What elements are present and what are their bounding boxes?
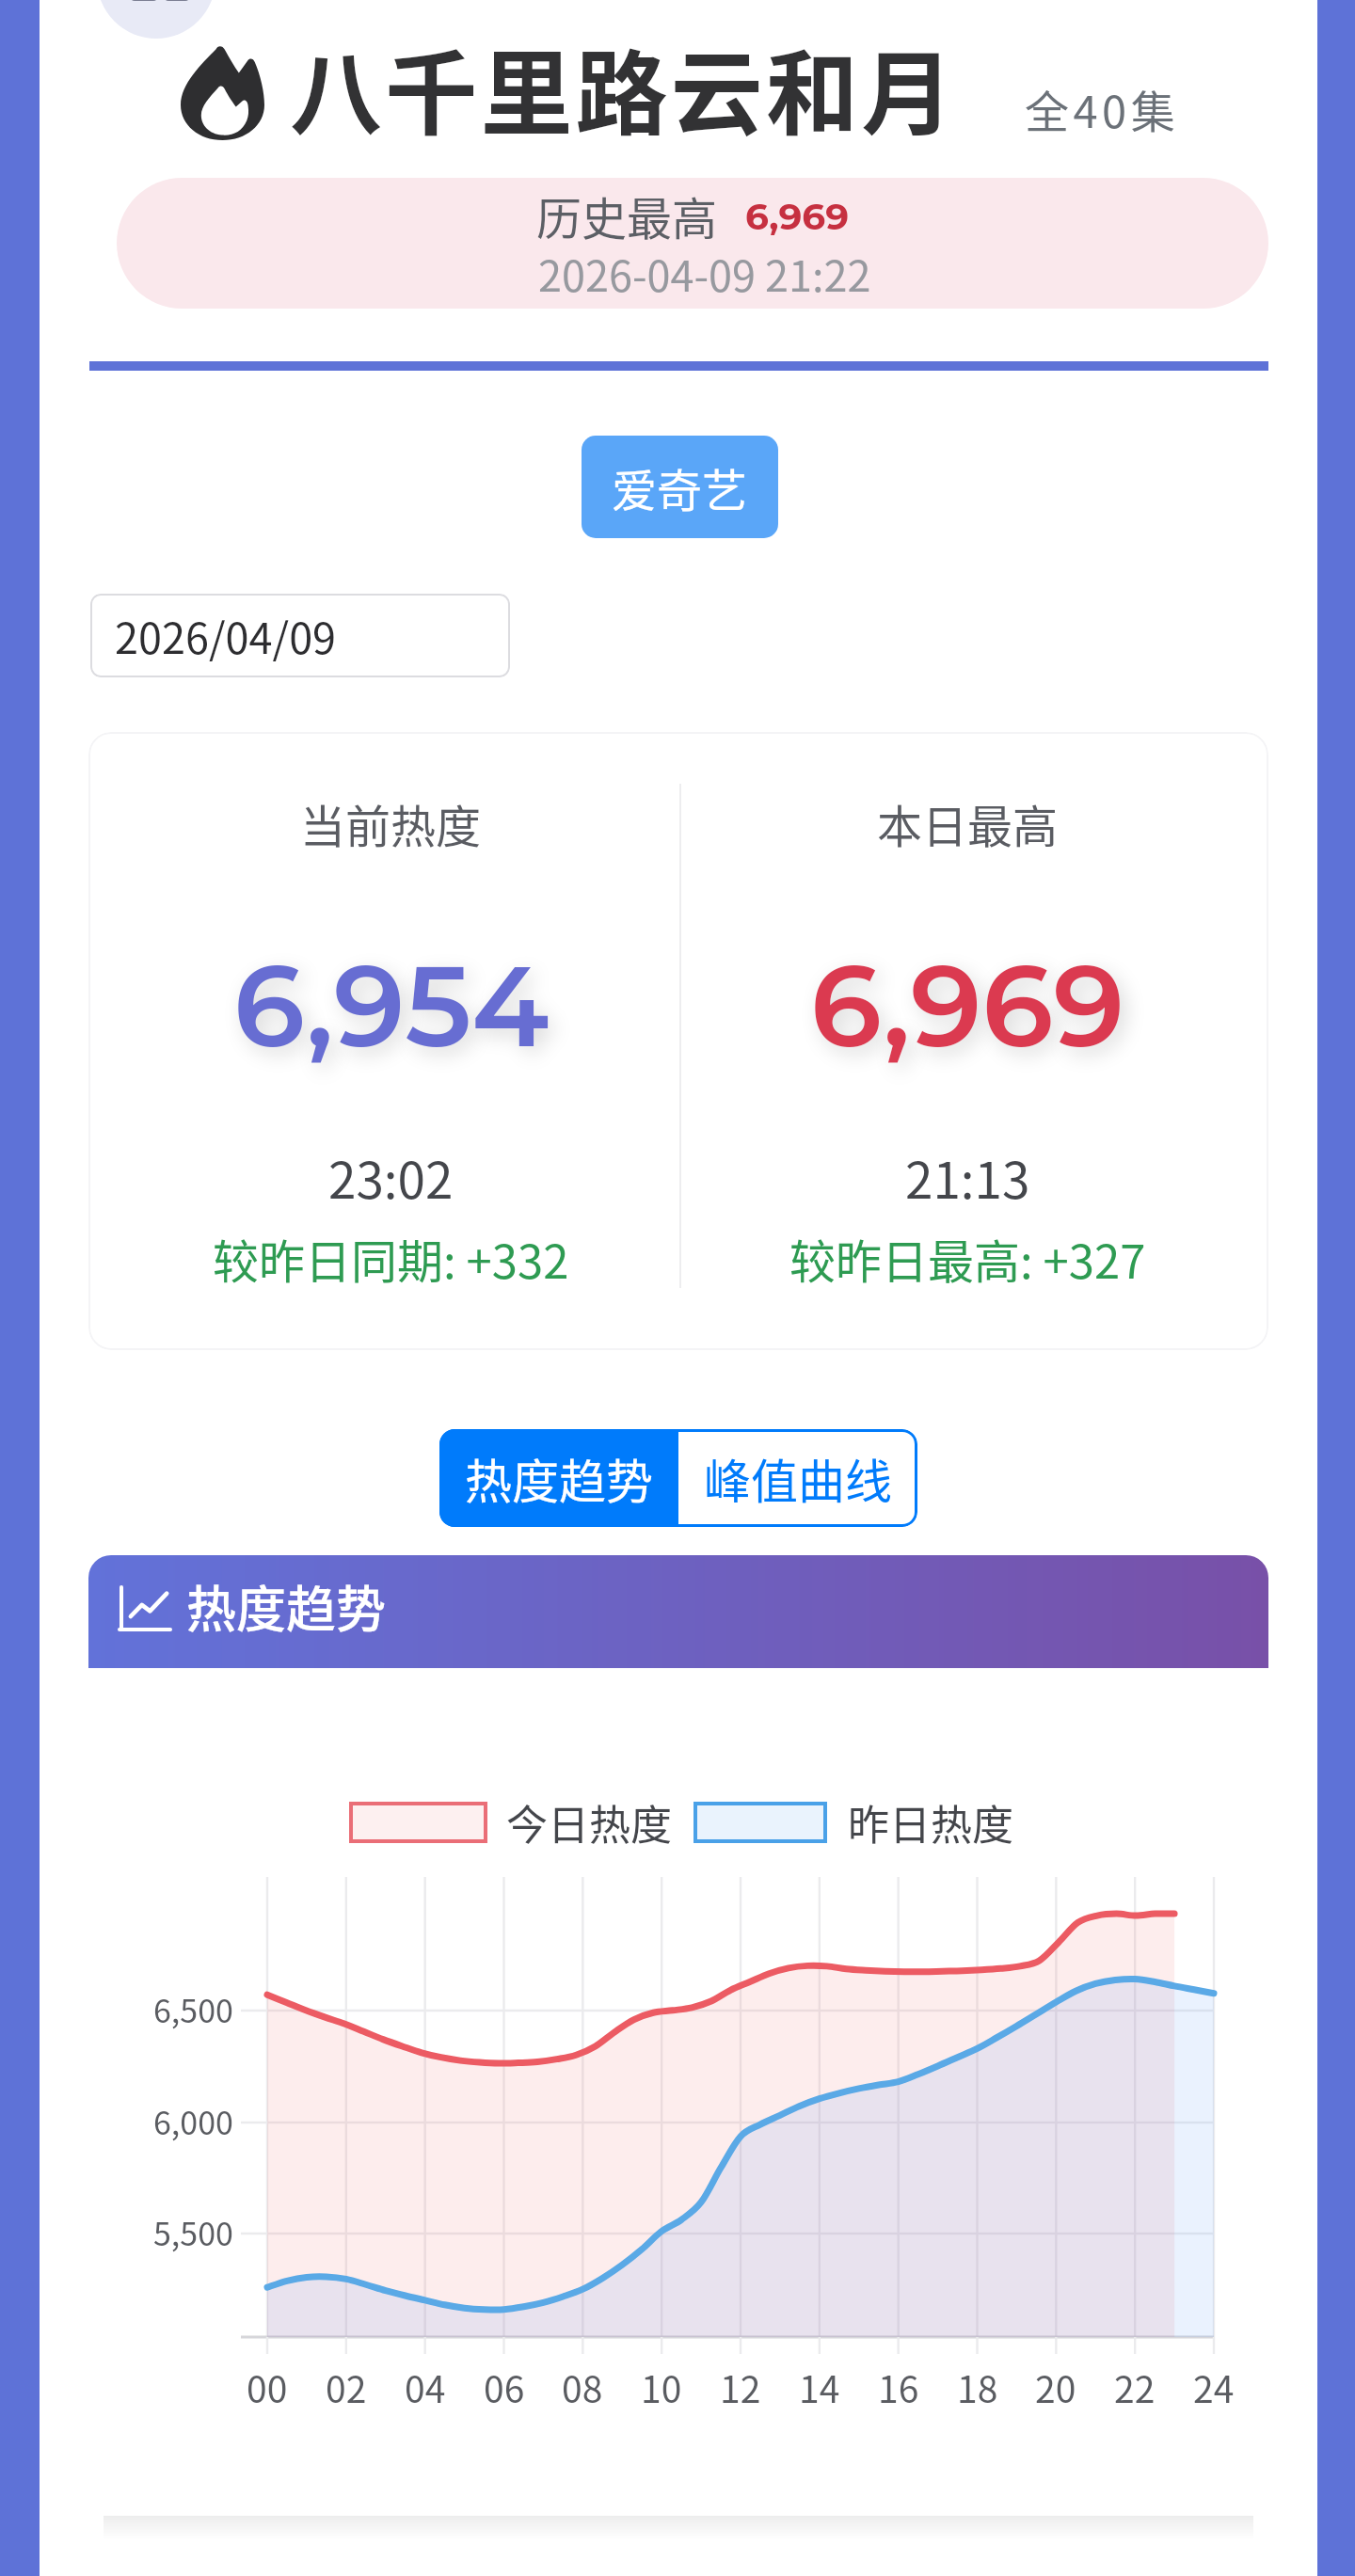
staticText: 当前热度	[300, 790, 482, 856]
button[interactable]: 峰值曲线	[678, 1429, 917, 1527]
staticText: 16	[878, 2361, 919, 2413]
staticText: 10	[641, 2361, 682, 2413]
staticText: 今日热度	[506, 1792, 672, 1852]
staticText: 热度趋势	[186, 1570, 386, 1643]
staticText: 昨日热度	[848, 1792, 1013, 1852]
button[interactable]: 热度趋势	[439, 1429, 678, 1527]
staticText: 04	[405, 2361, 446, 2413]
staticText: 20	[1035, 2361, 1076, 2413]
staticText: 2026-04-09 21:22	[538, 243, 871, 304]
staticText: 18	[957, 2361, 998, 2413]
staticText: 本日最高	[877, 790, 1059, 856]
staticText: 八千里路云和月	[290, 20, 957, 153]
staticText: 14	[799, 2361, 840, 2413]
button[interactable]: 爱奇艺	[582, 436, 778, 538]
staticText: 6,969	[745, 194, 849, 239]
staticText: 22	[1114, 2361, 1156, 2413]
staticText: 热度趋势	[465, 1444, 653, 1512]
staticText: 爱奇艺	[612, 454, 748, 520]
staticText: 21:13	[905, 1141, 1030, 1214]
staticText: 历史最高	[536, 183, 718, 248]
staticText: 12	[720, 2361, 761, 2413]
staticText: 02	[326, 2361, 367, 2413]
staticText: 00	[247, 2361, 288, 2413]
staticText: 24	[1193, 2361, 1235, 2413]
staticText: 6,969	[810, 936, 1125, 1074]
staticText: 峰值曲线	[704, 1444, 892, 1512]
staticText: 较昨日最高: +327	[789, 1225, 1146, 1292]
staticText: 23:02	[328, 1141, 454, 1214]
staticText: 全40集	[1025, 76, 1180, 140]
staticText: 2026/04/09	[115, 605, 337, 666]
staticText: 6,000	[153, 2098, 233, 2144]
staticText: 5,500	[153, 2209, 233, 2255]
staticText: 08	[562, 2361, 603, 2413]
button[interactable]: 2026/04/09	[90, 594, 510, 677]
staticText: 6,954	[233, 936, 550, 1074]
staticText: 06	[484, 2361, 525, 2413]
staticText: 较昨日同期: +332	[213, 1225, 569, 1292]
staticText: 6,500	[153, 1986, 233, 2032]
